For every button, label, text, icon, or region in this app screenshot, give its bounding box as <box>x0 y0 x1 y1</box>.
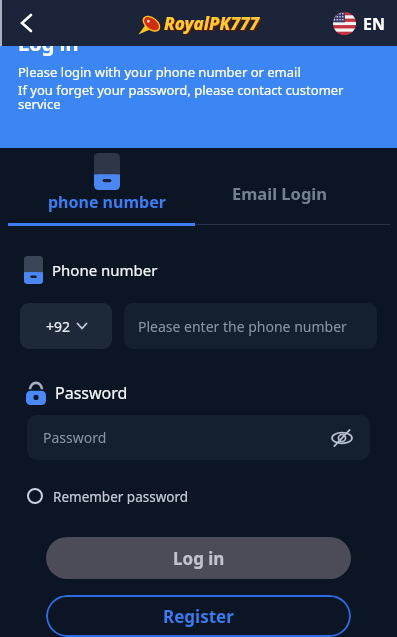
button[interactable]: Register <box>46 595 351 637</box>
staticText: Log in <box>18 46 79 57</box>
staticText: Phone number <box>52 260 158 280</box>
button[interactable]: EN <box>333 12 385 35</box>
button[interactable]: Log in <box>46 537 351 579</box>
staticText: Password <box>55 382 128 404</box>
button[interactable]: Password <box>27 415 370 460</box>
staticText: Please login with your phone number or e… <box>18 63 301 81</box>
staticText: Email Login <box>232 182 327 204</box>
button[interactable]: Email Login <box>198 148 397 223</box>
button[interactable]: Please enter the phone number <box>124 303 377 349</box>
button[interactable]: phone number <box>0 148 198 223</box>
button[interactable] <box>10 7 42 39</box>
staticText: Register <box>163 605 234 628</box>
staticText: Log in <box>173 547 225 570</box>
button[interactable]: +92 <box>20 303 112 349</box>
button[interactable]: Remember password <box>27 488 189 504</box>
staticText: phone number <box>48 191 166 213</box>
staticText: If you forget your password, please cont… <box>18 81 367 113</box>
button[interactable] <box>328 424 356 452</box>
staticText: Remember password <box>53 488 189 504</box>
staticText: +92 <box>46 317 71 336</box>
staticText: EN <box>363 13 385 35</box>
staticText: RoyalPK777 <box>164 12 260 35</box>
staticText: Password <box>43 428 107 447</box>
staticText: Please enter the phone number <box>138 317 347 336</box>
